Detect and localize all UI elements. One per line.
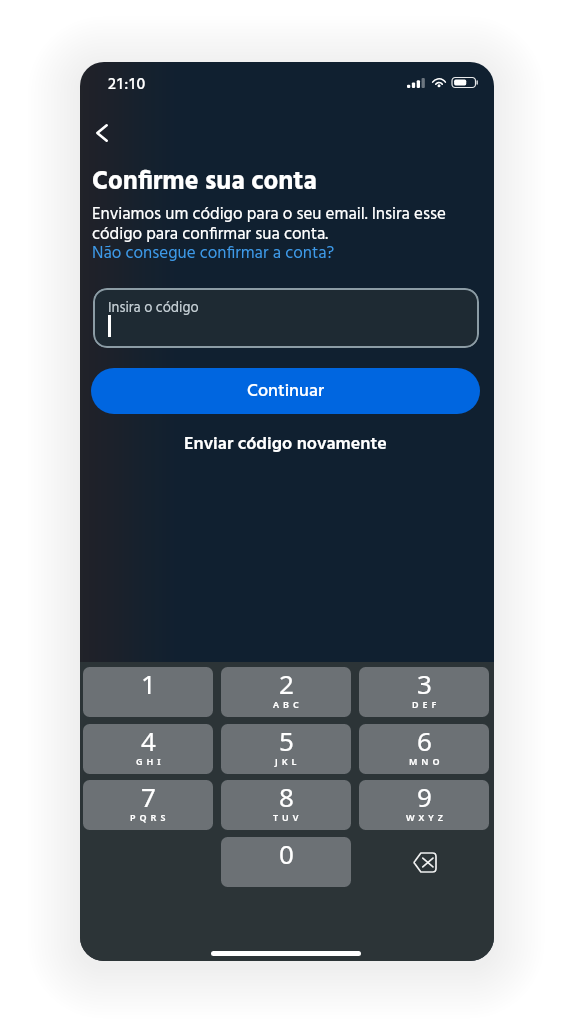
staticText: PQRS [130, 811, 170, 823]
button[interactable]: 9 [359, 780, 489, 830]
staticText: TUV [273, 811, 303, 823]
button[interactable]: 2 [221, 667, 351, 717]
staticText: 7 [141, 780, 156, 814]
button[interactable]: 8 [221, 780, 351, 830]
staticText: 0 [279, 837, 294, 871]
staticText: Enviar código novamente [184, 430, 387, 458]
staticText: Enviamos um código para o seu email. Ins… [92, 201, 484, 248]
staticText: 2 [279, 667, 294, 701]
staticText: Continuar [247, 377, 325, 406]
button[interactable]: Voltar [84, 115, 120, 151]
button[interactable]: Continuar [91, 368, 480, 414]
staticText: 9 [417, 780, 432, 814]
staticText: 5 [279, 724, 294, 758]
staticText: WXYZ [406, 811, 447, 823]
button[interactable]: 5 [221, 724, 351, 774]
staticText: 21:10 [108, 72, 147, 98]
button[interactable]: 4 [83, 724, 213, 774]
staticText: DEF [412, 698, 441, 710]
staticText: MNO [409, 755, 444, 767]
button[interactable]: 7 [83, 780, 213, 830]
button[interactable]: 3 [359, 667, 489, 717]
staticText: ABC [273, 698, 303, 710]
staticText: Confirme sua conta [92, 162, 317, 204]
button[interactable]: Insira o código [93, 288, 479, 348]
staticText: 6 [417, 724, 432, 758]
button[interactable]: Apagar [359, 837, 489, 887]
staticText: 3 [417, 667, 432, 701]
staticText: GHI [136, 755, 165, 767]
staticText: 1 [141, 667, 156, 701]
button[interactable]: 1 [83, 667, 213, 717]
button[interactable]: 6 [359, 724, 489, 774]
staticText: 4 [141, 724, 156, 758]
staticText: Insira o código [108, 297, 199, 320]
staticText: 8 [279, 780, 294, 814]
button[interactable]: 0 [221, 837, 351, 887]
staticText: JKL [275, 755, 301, 767]
button[interactable]: Enviar código novamente [91, 430, 480, 458]
button[interactable]: Não consegue confirmar a conta? [92, 240, 335, 267]
